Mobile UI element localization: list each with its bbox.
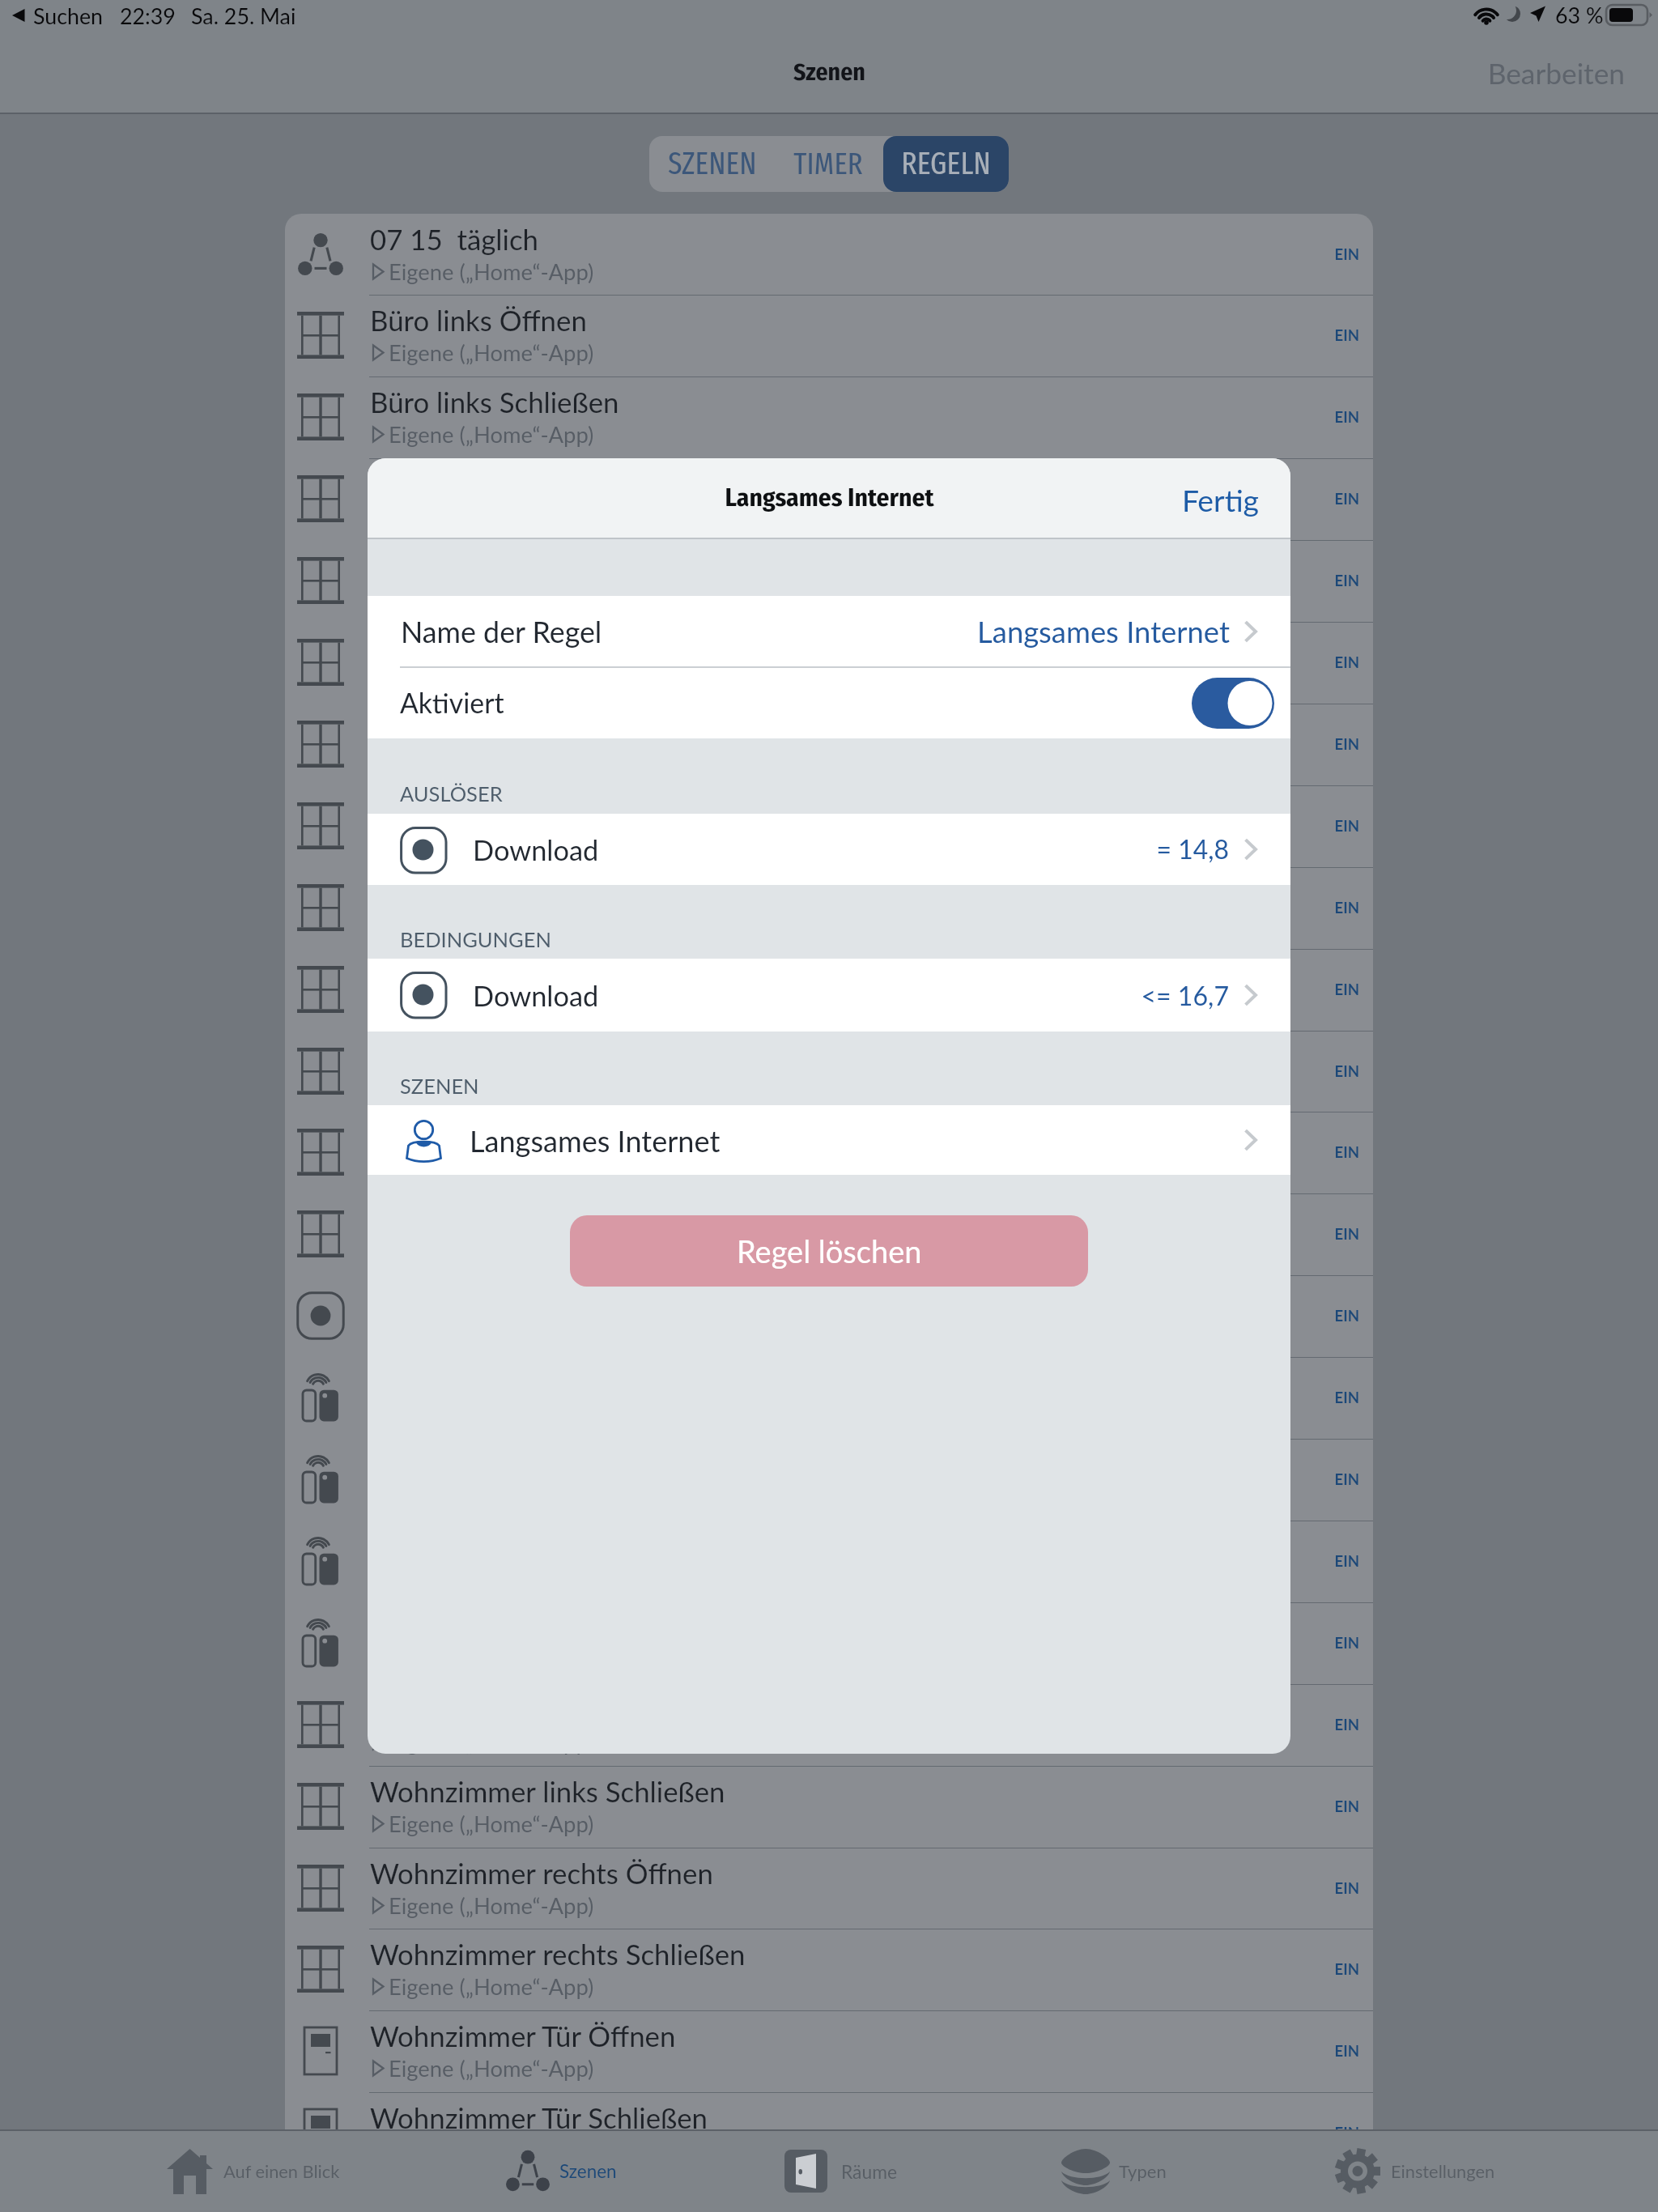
staticText: Download (473, 979, 599, 1012)
staticText: Einstellungen (1391, 2160, 1495, 2181)
staticText: Wohnzimmer Tür Schließen (370, 2101, 708, 2135)
staticText: EIN (1334, 1143, 1359, 1161)
staticText: Küche links Öffnen (370, 631, 606, 665)
staticText: Eigene („Home“-App) (389, 993, 594, 1020)
button[interactable]: Küche links Schließen (285, 704, 1373, 785)
staticText: Bearbeiten (1487, 56, 1625, 90)
staticText: EIN (1334, 2042, 1359, 2060)
button[interactable]: Büro links Öffnen (285, 295, 1373, 376)
staticText: Suchen (33, 3, 104, 29)
staticText: Eigene („Home“-App) (389, 2137, 594, 2163)
staticText: Eigene („Home“-App) (389, 1973, 594, 2000)
staticText: Schlafzimmer Öffnen (370, 958, 630, 992)
staticText: Eigene („Home“-App) (389, 1810, 594, 1837)
staticText: Eigene („Home“-App) (389, 830, 594, 857)
button[interactable]: Download (368, 814, 1290, 885)
staticText: Aktiviert (400, 687, 504, 720)
button[interactable]: Wohnzimmer rechts Schließen (285, 1929, 1373, 2010)
staticText: EIN (1334, 1960, 1359, 1978)
staticText: Langsames Internet (370, 1284, 612, 1318)
staticText: AUSLÖSER (400, 781, 503, 806)
button[interactable]: Wohnzimmer Tür Schließen (285, 2092, 1373, 2174)
button[interactable]: Wohnzimmer links Schließen (285, 1766, 1373, 1848)
button[interactable]: Aktiviert (368, 667, 1290, 738)
staticText: EIN (1334, 1470, 1359, 1488)
staticText: Eigene („Home“-App) (389, 1156, 594, 1183)
button[interactable]: Bearbeiten (1457, 45, 1642, 101)
button[interactable]: Räume (729, 2131, 971, 2212)
staticText: Fertig (1181, 482, 1259, 518)
staticText: Eigene („Home“-App) (389, 666, 594, 693)
staticText: Sa. 25. Mai (191, 3, 296, 29)
staticText: EIN (1334, 1879, 1359, 1897)
button[interactable]: Wohnzimmer rechts Öffnen (285, 1848, 1373, 1929)
staticText: EIN (1334, 245, 1359, 263)
staticText: EIN (1334, 572, 1359, 589)
staticText: BEDINGUNGEN (400, 927, 551, 952)
button[interactable]: REGELN (883, 136, 1009, 192)
staticText: Eigene („Home“-App) (389, 1238, 594, 1265)
staticText: Wohnzimmer links Schließen (370, 1775, 725, 1809)
button[interactable]: Küche rechts Öffnen (285, 785, 1373, 867)
button[interactable]: Aktiviert (1192, 678, 1274, 729)
button[interactable]: Fertig (1166, 470, 1263, 530)
button[interactable]: Schlafzimmer Schließen (285, 1031, 1373, 1112)
button[interactable]: Büro rechts Schließen (285, 540, 1373, 622)
button[interactable]: Langsames Internet (368, 1105, 1290, 1175)
staticText: <= 16,7 (1141, 980, 1229, 1011)
button[interactable]: Wohnzimmer Tür Öffnen (285, 2010, 1373, 2092)
staticText: 63 % (1555, 2, 1604, 28)
staticText: TIMER (793, 146, 863, 182)
button[interactable]: Sensor Bad (285, 1521, 1373, 1602)
button[interactable]: Regel löschen (570, 1215, 1088, 1287)
staticText: Eigene („Home“-App) (389, 1729, 594, 1755)
staticText: Räume (841, 2160, 897, 2182)
staticText: Büro links Öffnen (370, 304, 587, 338)
staticText: EIN (1334, 1389, 1359, 1406)
button[interactable]: TIMER (771, 136, 885, 192)
button[interactable]: Schlafzimmer Öffnen (285, 949, 1373, 1031)
button[interactable]: Download (368, 959, 1290, 1032)
staticText: EIN (1334, 817, 1359, 835)
staticText: 22:39 (120, 3, 176, 29)
button[interactable]: Sensor Büro (285, 1357, 1373, 1439)
button[interactable]: Bad Schließen (285, 1193, 1373, 1275)
button[interactable]: Bad Öffnen (285, 1112, 1373, 1193)
button[interactable]: Langsames Internet (285, 1275, 1373, 1357)
button[interactable]: SZENEN (649, 136, 769, 192)
staticText: Langsames Internet (725, 483, 934, 513)
button[interactable]: Name der Regel (368, 596, 1290, 667)
button[interactable]: Sensor Küche (285, 1439, 1373, 1521)
button[interactable]: Typen (1004, 2131, 1247, 2212)
staticText: EIN (1334, 1634, 1359, 1652)
button[interactable]: Wohnzimmer links Öffnen (285, 1684, 1373, 1766)
button[interactable]: Szenen (461, 2131, 704, 2212)
button[interactable]: Küche links Öffnen (285, 622, 1373, 704)
staticText: EIN (1334, 326, 1359, 344)
staticText: Wohnzimmer rechts Öffnen (370, 1857, 713, 1891)
staticText: Küche links Schließen (370, 713, 638, 747)
staticText: Eigene („Home“-App) (389, 585, 594, 611)
button[interactable]: Büro links Schließen (285, 376, 1373, 458)
staticText: EIN (1334, 735, 1359, 753)
button[interactable]: Einstellungen (1279, 2131, 1571, 2212)
button[interactable]: 07 15 täglich (285, 214, 1373, 295)
button[interactable]: Sensor Flur (285, 1602, 1373, 1684)
staticText: Name der Regel (401, 615, 602, 649)
button[interactable]: Büro rechts Öffnen (285, 458, 1373, 540)
button[interactable]: Auf einen Blick (121, 2131, 397, 2212)
staticText: Büro links Schließen (370, 385, 619, 419)
staticText: EIN (1334, 408, 1359, 426)
staticText: Wohnzimmer rechts Schließen (370, 1938, 746, 1972)
staticText: Eigene („Home“-App) (389, 339, 594, 366)
button[interactable]: Küche rechts Schließen (285, 867, 1373, 949)
staticText: Küche rechts Schließen (370, 876, 658, 910)
staticText: Typen (1119, 2160, 1167, 2181)
